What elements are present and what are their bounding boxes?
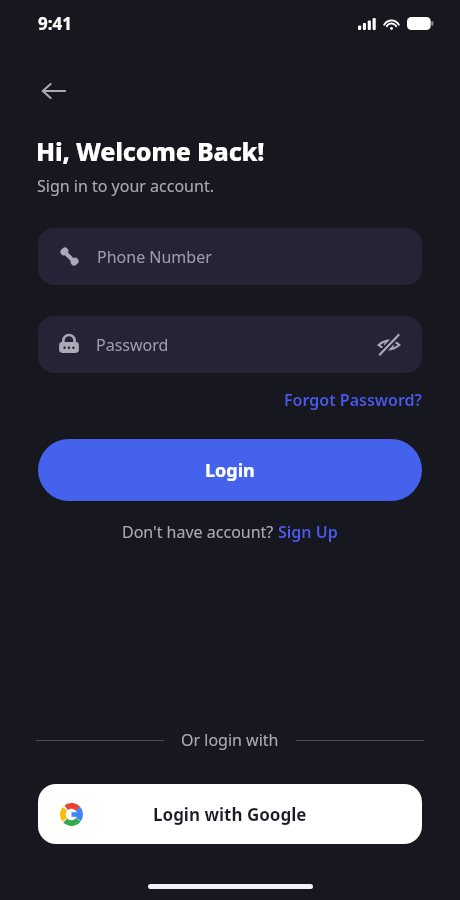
button[interactable]: Phone Number [38,228,422,285]
staticText: Sign Up [278,521,338,543]
button[interactable]: Login [38,439,422,501]
staticText: Login [205,458,255,483]
staticText: Forgot Password? [284,389,422,411]
button[interactable]: Password [38,316,422,373]
button[interactable]: Sign Up [278,521,338,543]
button[interactable]: Forgot Password? [280,386,426,414]
staticText: Phone Number [97,246,212,268]
staticText: Hi, Welcome Back! [36,134,265,168]
staticText: 9:41 [38,12,72,35]
staticText: Password [96,334,372,356]
staticText: Login with Google [153,803,307,826]
staticText: Sign in to your account. [37,175,214,197]
staticText: Don't have account? [122,521,278,543]
staticText: Or login with [181,729,279,751]
button[interactable]: Login with Google [38,784,422,844]
button[interactable]: Show password [372,328,406,362]
button[interactable]: Back [30,67,78,115]
